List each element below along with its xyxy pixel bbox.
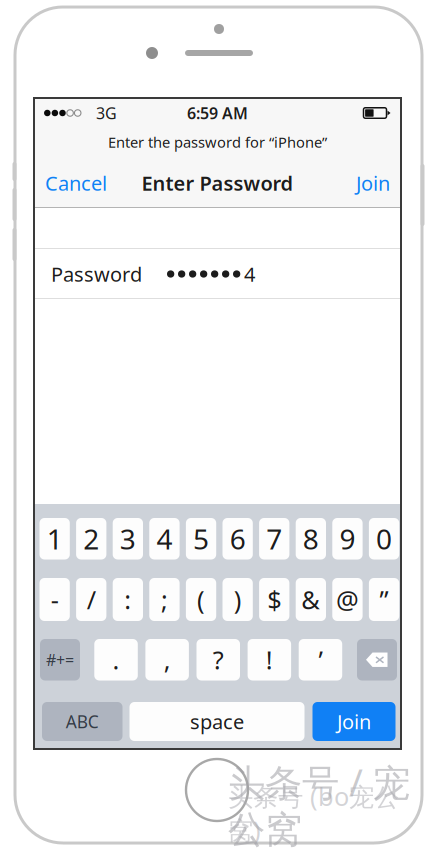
button[interactable]: .	[94, 639, 138, 680]
button[interactable]: Join	[312, 702, 395, 741]
staticText: space	[190, 708, 244, 735]
button[interactable]: Cancel	[45, 170, 125, 196]
button[interactable]: :	[113, 578, 143, 621]
button[interactable]: !	[248, 639, 291, 680]
staticText: ;	[161, 583, 168, 616]
staticText: 1	[47, 520, 63, 557]
staticText: /	[87, 583, 96, 616]
button[interactable]: (	[186, 578, 216, 621]
staticText: @	[336, 583, 359, 616]
staticText: #+=	[46, 649, 74, 670]
button[interactable]: 0	[369, 518, 399, 559]
button[interactable]: ?	[196, 639, 240, 680]
staticText: Password	[51, 261, 142, 287]
button[interactable]: 1	[39, 518, 70, 559]
staticText: 8	[303, 520, 319, 557]
staticText: &	[301, 583, 320, 616]
button[interactable]: 4	[149, 518, 180, 559]
staticText: (	[197, 583, 205, 616]
staticText: 6:59 AM	[187, 102, 248, 124]
staticText: ’	[318, 643, 322, 676]
staticText: ?	[213, 643, 224, 676]
staticText: !	[266, 643, 273, 676]
button[interactable]: 9	[332, 518, 363, 559]
button[interactable]: &	[296, 578, 326, 621]
button[interactable]: 2	[76, 518, 106, 559]
staticText: 3	[120, 520, 136, 557]
button[interactable]: )	[222, 578, 253, 621]
button[interactable]: ;	[149, 578, 180, 621]
staticText: 4	[244, 261, 255, 287]
button[interactable]: $	[259, 578, 289, 621]
button[interactable]: @	[332, 578, 363, 621]
button[interactable]: 6	[222, 518, 253, 559]
button[interactable]: #+=	[40, 639, 80, 680]
staticText: Join	[356, 170, 390, 196]
staticText: Join	[337, 708, 371, 735]
button[interactable]: /	[76, 578, 106, 621]
button[interactable]: ABC	[42, 702, 122, 741]
button[interactable]: 5	[186, 518, 216, 559]
staticText: -	[51, 583, 59, 616]
staticText: 头条号 / 宠公窝	[228, 757, 410, 853]
button[interactable]: space	[129, 702, 304, 741]
staticText: 5	[193, 520, 209, 557]
button[interactable]: Delete	[357, 639, 397, 680]
staticText: .	[112, 643, 119, 676]
staticText: ABC	[66, 710, 99, 733]
button[interactable]: ,	[145, 639, 189, 680]
staticText: 7	[266, 520, 282, 557]
button[interactable]: ’	[299, 639, 342, 680]
button[interactable]: Join	[330, 170, 390, 196]
button[interactable]: -	[39, 578, 70, 621]
staticText: 0	[376, 520, 392, 557]
staticText: 4	[156, 520, 172, 557]
staticText: Enter Password	[141, 170, 293, 196]
staticText: 3G	[96, 102, 117, 124]
staticText: :	[124, 583, 131, 616]
button[interactable]: 8	[296, 518, 326, 559]
staticText: Enter the password for “iPhone”	[108, 132, 327, 152]
staticText: 6	[230, 520, 246, 557]
button[interactable]: 7	[259, 518, 289, 559]
staticText: ”	[380, 583, 389, 616]
staticText: 头条号 (bo宠公窝)	[228, 779, 399, 847]
staticText: ,	[164, 643, 171, 676]
staticText: 2	[83, 520, 99, 557]
staticText: $	[267, 583, 281, 616]
button[interactable]: 3	[113, 518, 143, 559]
staticText: 9	[339, 520, 355, 557]
staticText: Cancel	[45, 170, 107, 196]
button[interactable]: ”	[369, 578, 399, 621]
staticText: )	[234, 583, 242, 616]
